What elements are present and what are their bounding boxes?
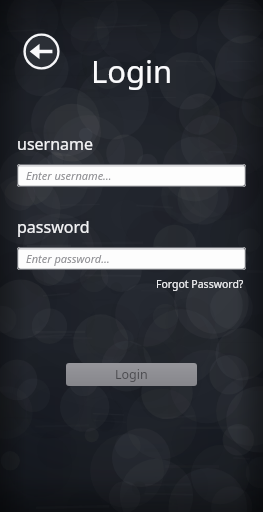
staticText: Login xyxy=(0,50,263,92)
staticText: password xyxy=(17,216,90,238)
button[interactable]: Forgot Password? xyxy=(154,275,246,293)
staticText: Forgot Password? xyxy=(156,277,244,291)
staticText: Login xyxy=(115,366,148,383)
button[interactable]: Enter username… xyxy=(17,164,246,187)
button[interactable]: Enter password… xyxy=(17,247,246,270)
button[interactable]: Back xyxy=(22,32,61,71)
button[interactable]: Login xyxy=(66,363,197,386)
staticText: Enter username… xyxy=(26,168,112,183)
staticText: username xyxy=(17,133,94,155)
staticText: Enter password… xyxy=(26,251,110,266)
